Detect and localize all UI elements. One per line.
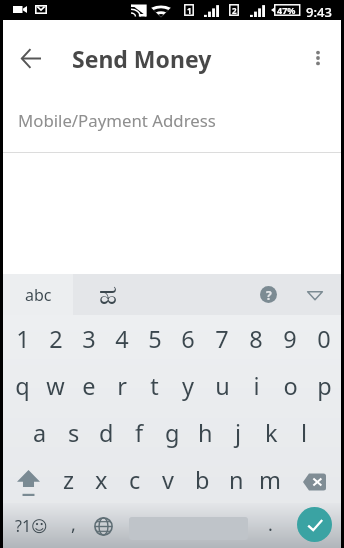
staticText: . [268,512,273,537]
button[interactable]: ?1☺ [4,503,58,548]
staticText: 2 [232,5,237,16]
button[interactable]: 2 [39,315,72,362]
staticText: n [229,464,244,496]
button[interactable]: u [205,362,239,409]
button[interactable]: Enter [290,504,338,544]
staticText: g [165,417,180,449]
button[interactable]: abc [3,274,73,315]
button[interactable]: d [90,409,123,456]
staticText: e [82,370,96,402]
staticText: p [317,370,332,402]
button[interactable]: w [39,362,72,409]
button[interactable]: j [222,409,255,456]
button[interactable]: n [219,456,253,503]
button[interactable]: 3 [72,315,105,362]
button[interactable]: 0 [307,315,341,362]
staticText: c [129,464,141,496]
staticText: w [46,370,65,402]
button[interactable]: z [52,456,85,503]
button[interactable]: Back [3,38,59,78]
staticText: ? [266,287,272,303]
staticText: 4 [115,323,129,355]
button[interactable]: p [307,362,341,409]
staticText: 47% [277,4,296,16]
button[interactable]: m [253,456,287,503]
staticText: m [259,464,281,496]
staticText: i [253,370,260,402]
button[interactable]: Change language [89,503,117,548]
staticText: 0 [317,323,331,355]
staticText: o [283,370,298,402]
button[interactable]: Mobile/Payment Address [3,78,341,152]
button[interactable]: i [239,362,273,409]
staticText: u [215,370,230,402]
staticText: , [71,512,76,537]
button[interactable]: g [156,409,189,456]
button[interactable]: Help [243,274,294,315]
button[interactable]: 4 [105,315,138,362]
button[interactable]: 9 [273,315,307,362]
staticText: t [150,370,159,402]
staticText: abc [25,284,52,306]
button[interactable]: ಹ [73,274,143,315]
button[interactable]: a [23,409,57,456]
button[interactable]: 5 [138,315,171,362]
staticText: s [68,417,80,449]
staticText: 3 [82,323,96,355]
button[interactable]: t [138,362,171,409]
staticText: y [182,370,194,402]
staticText: b [195,464,210,496]
staticText: 2 [49,323,63,355]
button[interactable]: o [273,362,307,409]
button[interactable]: k [255,409,288,456]
staticText: Mobile/Payment Address [18,109,216,132]
button[interactable]: 8 [239,315,273,362]
button[interactable]: 7 [205,315,239,362]
button[interactable]: Hide keyboard [294,274,336,315]
button[interactable]: q [6,362,39,409]
button[interactable]: Backspace [287,456,341,503]
button[interactable]: y [171,362,205,409]
button[interactable]: h [189,409,222,456]
staticText: 7 [215,323,229,355]
staticText: j [235,417,242,449]
staticText: Send Money [72,43,212,74]
staticText: d [99,417,114,449]
staticText: k [265,417,278,449]
button[interactable]: f [123,409,156,456]
button[interactable]: , [60,503,86,548]
button[interactable]: v [151,456,185,503]
staticText: z [63,464,75,496]
button[interactable]: l [288,409,321,456]
staticText: x [95,464,108,496]
button[interactable]: x [85,456,118,503]
staticText: l [301,417,308,449]
button[interactable]: r [105,362,138,409]
staticText: f [135,417,144,449]
staticText: 1 [16,323,30,355]
staticText: ಹ [99,283,118,309]
button[interactable]: More options [296,38,340,78]
staticText: q [15,370,30,402]
staticText: 9 [283,323,297,355]
button[interactable]: s [57,409,90,456]
button[interactable]: e [72,362,105,409]
button[interactable]: . [255,503,285,548]
staticText: v [162,464,174,496]
button[interactable]: b [185,456,219,503]
button[interactable]: 1 [6,315,39,362]
button[interactable]: 6 [171,315,205,362]
staticText: ?1☺ [15,515,48,537]
staticText: 1 [187,5,192,16]
staticText: r [117,370,127,402]
button[interactable]: c [118,456,151,503]
staticText: 5 [148,323,162,355]
staticText: 6 [181,323,195,355]
staticText: 9:43 [306,3,332,21]
staticText: 8 [249,323,263,355]
button[interactable]: Shift [3,456,52,503]
staticText: h [198,417,213,449]
staticText: a [33,417,47,449]
